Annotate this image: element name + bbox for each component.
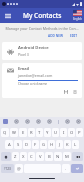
staticText: Choose a nickname (18, 82, 48, 86)
button[interactable]: B (45, 152, 53, 161)
staticText: V (39, 154, 42, 160)
button[interactable]: M (63, 152, 71, 161)
button[interactable]: EDIT (68, 33, 80, 39)
button[interactable]: Z (12, 152, 19, 161)
staticText: ADD NEW (48, 34, 63, 38)
button[interactable]: Theme (65, 119, 70, 124)
staticText: I (63, 130, 65, 136)
button[interactable]: F (32, 140, 39, 149)
button[interactable]: I (60, 128, 67, 137)
staticText: G (42, 142, 46, 148)
staticText: janedoe@email.com (18, 73, 53, 78)
staticText: U (54, 130, 58, 136)
button[interactable]: V (36, 152, 44, 161)
staticText: Y (46, 130, 49, 136)
button[interactable]: S (14, 140, 22, 149)
button[interactable]: N (54, 152, 62, 161)
staticText: C (30, 154, 33, 160)
button[interactable]: J (56, 140, 63, 149)
button[interactable]: X (20, 152, 27, 161)
staticText: K (66, 142, 69, 148)
button[interactable]: Y (44, 128, 51, 137)
button[interactable]: @ (15, 164, 23, 173)
staticText: Android Device (18, 45, 49, 51)
staticText: O (70, 130, 74, 136)
staticText: Email (18, 66, 30, 72)
staticText: S (17, 142, 20, 148)
button[interactable]: L (72, 140, 79, 149)
staticText: English (73, 17, 82, 21)
staticText: ?123 (4, 167, 11, 171)
button[interactable]: ADD NEW (46, 33, 65, 39)
button[interactable]: ?123 (1, 164, 14, 173)
button[interactable]: W (10, 128, 18, 137)
staticText: W (12, 130, 16, 136)
staticText: Pixel 3 (18, 52, 29, 57)
button[interactable]: Backspace (72, 152, 83, 161)
staticText: N (56, 154, 60, 160)
button[interactable]: Change language (73, 10, 82, 21)
button[interactable]: C (28, 152, 35, 161)
button[interactable]: Emoji (47, 119, 52, 124)
button[interactable]: E (19, 128, 27, 137)
button[interactable]: A (5, 140, 13, 149)
button[interactable]: G (40, 140, 47, 149)
staticText: J (59, 142, 61, 148)
button[interactable]: R (28, 128, 35, 137)
staticText: H (50, 142, 54, 148)
staticText: EDIT (70, 34, 78, 38)
staticText: F (34, 142, 37, 148)
button[interactable]: P (76, 128, 83, 137)
staticText: @ (17, 166, 21, 171)
button[interactable]: O (68, 128, 75, 137)
button[interactable]: Android Device (6, 45, 78, 57)
staticText: My Contacts (23, 11, 62, 20)
staticText: X (22, 154, 25, 160)
staticText: Manage your Contact Methods in the Conta… (5, 26, 79, 31)
button[interactable]: GIF (14, 119, 19, 124)
button[interactable]: K (64, 140, 71, 149)
button[interactable]: Open navigation menu (3, 11, 12, 20)
staticText: M (65, 154, 69, 160)
button[interactable]: D (23, 140, 31, 149)
button[interactable]: Stickers (25, 119, 30, 124)
staticText: . (65, 166, 67, 171)
button[interactable]: Delete (71, 88, 78, 95)
staticText: L (74, 142, 77, 148)
staticText: Q (3, 130, 7, 136)
button[interactable]: Settings (76, 119, 81, 124)
staticText: E (22, 130, 25, 136)
staticText: D (25, 142, 29, 148)
staticText: A (8, 142, 11, 148)
button[interactable]: Gboard menu (3, 119, 8, 124)
staticText: T (38, 130, 41, 136)
button[interactable]: Save (62, 88, 69, 95)
button[interactable]: . (62, 164, 70, 173)
button[interactable]: Clipboard (36, 119, 41, 124)
staticText: P (78, 130, 81, 136)
staticText: B (48, 154, 51, 160)
button[interactable]: Shift (1, 152, 11, 161)
button[interactable]: Enter (71, 164, 83, 173)
button[interactable]: H (48, 140, 55, 149)
button[interactable]: Q (1, 128, 9, 137)
staticText: Z (14, 154, 17, 160)
staticText: R (30, 130, 33, 136)
button[interactable]: U (52, 128, 59, 137)
button[interactable]: T (36, 128, 43, 137)
